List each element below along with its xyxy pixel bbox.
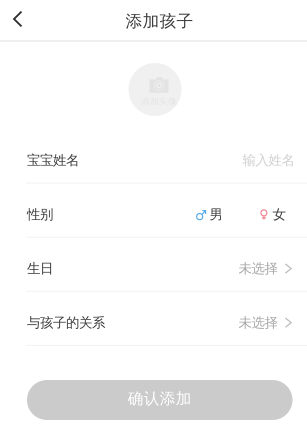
staticText: 性别 bbox=[27, 206, 53, 223]
staticText: 添加孩子 bbox=[125, 11, 193, 32]
button[interactable]: 生日 bbox=[0, 238, 307, 291]
button[interactable]: 确认添加 bbox=[27, 380, 292, 420]
staticText: 输入姓名 bbox=[242, 152, 294, 169]
staticText: 宝宝姓名 bbox=[27, 152, 79, 169]
staticText: 与孩子的关系 bbox=[27, 314, 105, 331]
button[interactable]: 女 bbox=[259, 206, 285, 223]
staticText: 确认添加 bbox=[128, 389, 192, 408]
staticText: 未选择 bbox=[238, 260, 277, 277]
staticText: 女 bbox=[272, 206, 285, 223]
staticText: 生日 bbox=[27, 260, 53, 277]
button[interactable]: 添加头像 bbox=[128, 63, 181, 116]
staticText: 添加头像 bbox=[141, 96, 177, 107]
button[interactable]: 返回 bbox=[0, 0, 34, 40]
staticText: 男 bbox=[209, 206, 222, 223]
button[interactable]: 男 bbox=[196, 206, 222, 223]
staticText: 未选择 bbox=[238, 314, 277, 331]
button[interactable]: 与孩子的关系 bbox=[0, 292, 307, 345]
